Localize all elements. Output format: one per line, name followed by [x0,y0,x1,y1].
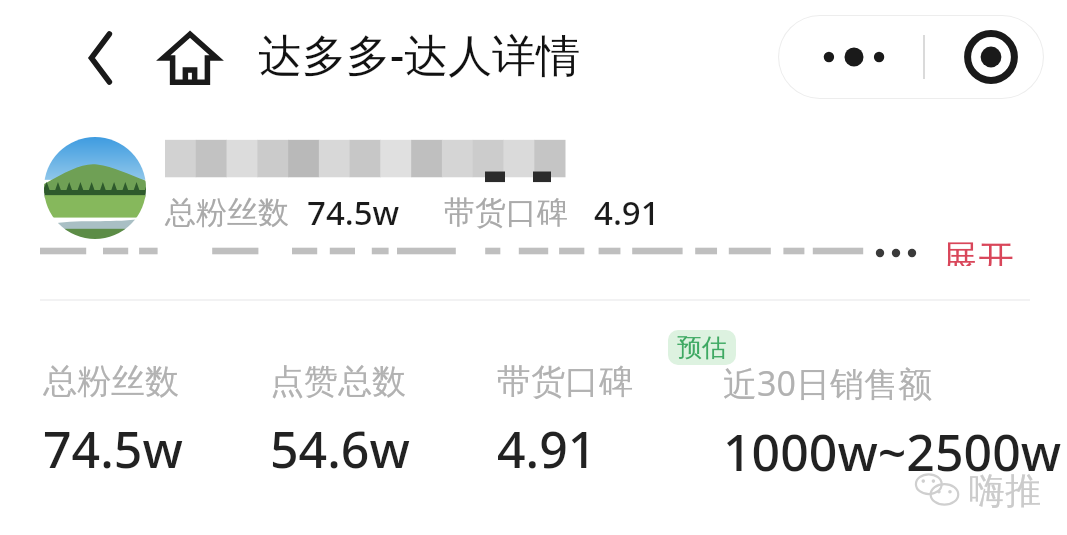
staticText: 点赞总数 [270,360,406,403]
button[interactable]: More [796,15,912,99]
staticText: 达多多-达人详情 [258,24,581,84]
staticText: 4.91 [497,415,597,483]
button[interactable]: More [778,15,1044,99]
staticText: 54.6w [270,415,410,483]
staticText: 带货口碑 [444,193,568,232]
staticText: 4.91 [594,190,660,235]
button[interactable]: 带货口碑 [497,360,633,483]
staticText: 74.5w [307,190,400,235]
staticText: 总粉丝数 [43,360,179,403]
button[interactable]: 预估 [668,330,736,365]
staticText: 带货口碑 [497,360,633,403]
button[interactable]: Back [72,22,130,94]
button[interactable] [44,137,146,239]
button[interactable]: 展开 [942,236,1034,266]
staticText: 预估 [677,332,727,363]
staticText: 1000w~2500w [723,418,1062,486]
button[interactable]: 点赞总数 [270,360,410,483]
button[interactable] [40,240,880,262]
staticText: 近30日销售额 [723,360,932,406]
staticText: 嗨推 [969,468,1041,513]
staticText: 74.5w [43,415,183,483]
button[interactable]: Home [150,22,230,94]
staticText: 总粉丝数 [165,193,289,232]
staticText: 展开 [942,236,1014,266]
button[interactable]: 近30日销售额 [723,360,1062,486]
button[interactable]: Close mini program [938,15,1044,99]
button[interactable]: 总粉丝数 [43,360,183,483]
